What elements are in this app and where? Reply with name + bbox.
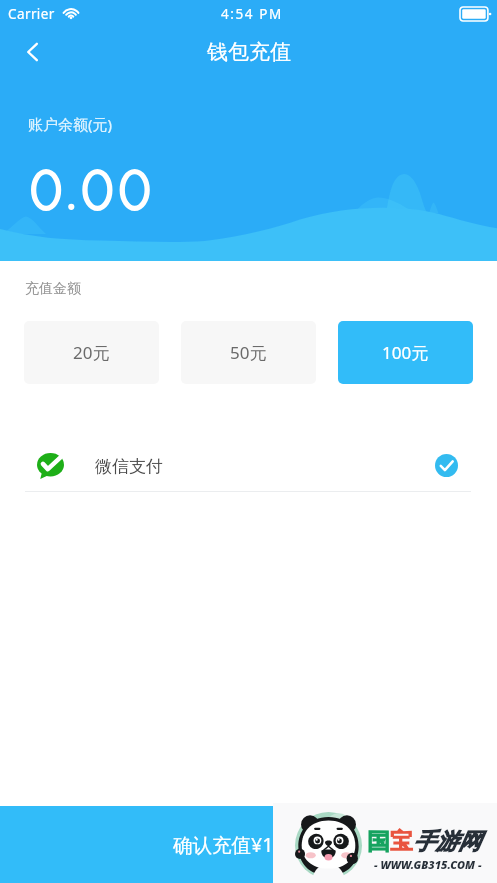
other: Selected [435, 454, 458, 477]
button[interactable]: Back [11, 30, 55, 74]
button[interactable]: WeChat Pay [0, 438, 497, 493]
staticText: 50元 [230, 341, 267, 364]
button[interactable]: 确认充值¥100.00 [0, 806, 497, 883]
other: WeChat Pay [37, 453, 64, 479]
button[interactable]: 50元 [181, 321, 316, 384]
staticText: 确认充值¥100.00 [173, 831, 324, 858]
staticText: 手游网 [413, 827, 481, 855]
staticText: 100元 [382, 341, 429, 364]
staticText: 账户余额(元) [28, 114, 113, 134]
staticText: - WWW.GB315.COM - [374, 857, 482, 872]
staticText: 充值金额 [25, 280, 81, 298]
staticText: 宝 [390, 827, 413, 855]
staticText: 钱包充值 [207, 39, 291, 65]
button[interactable]: 100元 [338, 321, 473, 384]
button[interactable]: 20元 [24, 321, 159, 384]
staticText: 微信支付 [95, 456, 163, 477]
staticText: 20元 [73, 341, 110, 364]
staticText: 4:54 PM [221, 5, 283, 23]
staticText: 国 [367, 827, 390, 855]
staticText: Carrier [8, 5, 55, 23]
